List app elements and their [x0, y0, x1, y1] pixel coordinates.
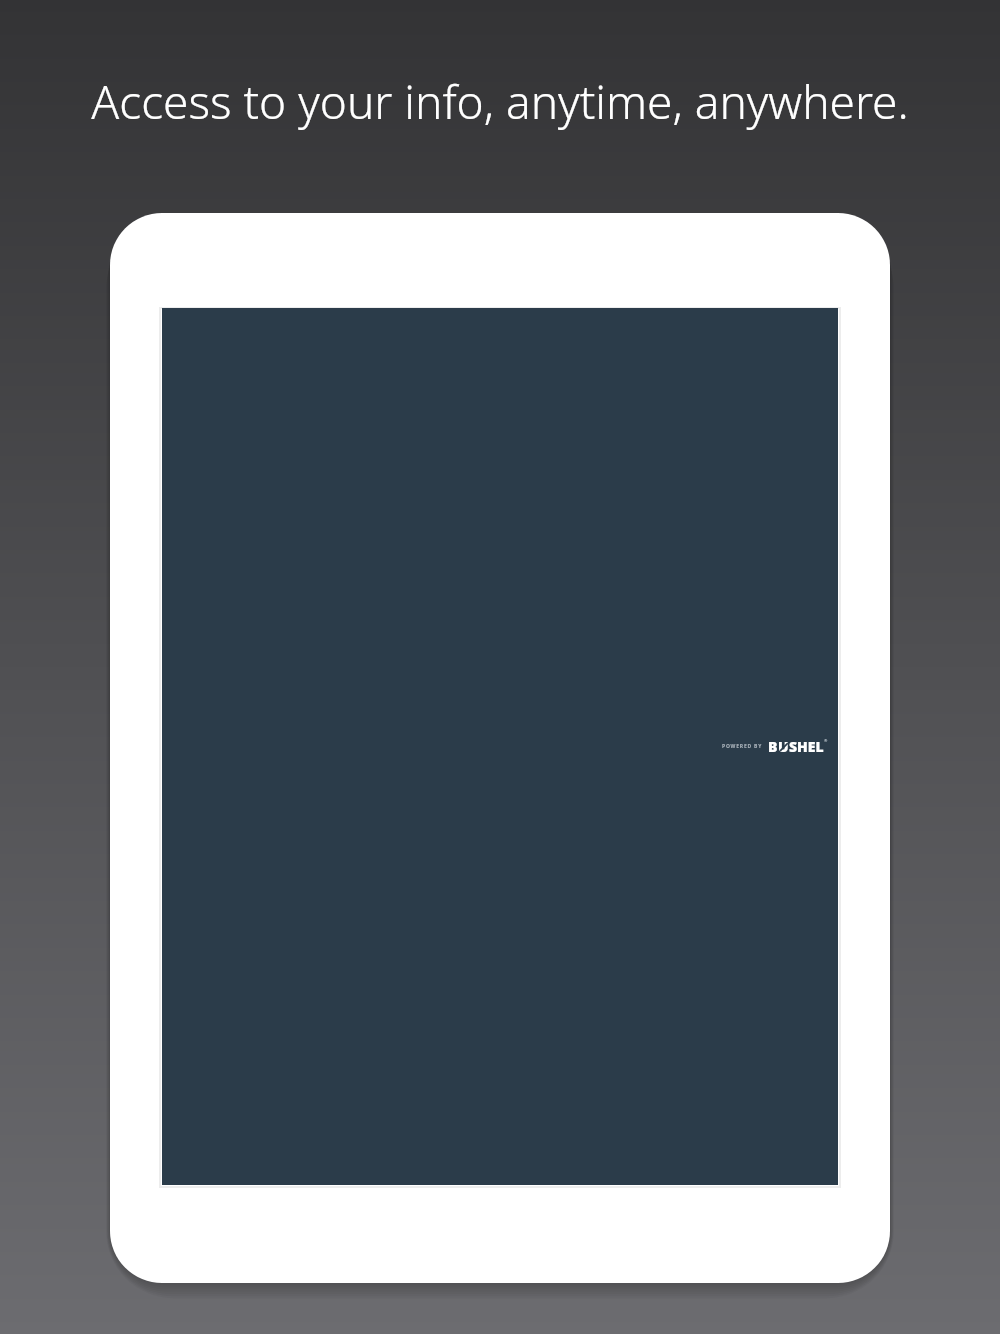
staticText: Access to your info, anytime, anywhere. — [91, 70, 909, 133]
staticText: B — [768, 737, 778, 756]
staticText: U — [778, 737, 789, 756]
staticText: POWERED BY — [722, 743, 763, 750]
staticText: SHEL — [789, 737, 824, 756]
staticText: ® — [824, 738, 828, 743]
